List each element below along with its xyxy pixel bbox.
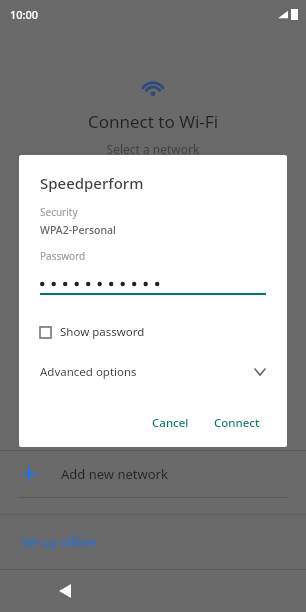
staticText: Show password <box>60 324 145 340</box>
staticText: Password <box>40 249 86 263</box>
button[interactable]: Show password <box>40 321 266 343</box>
button[interactable]: Set up offline <box>0 515 306 569</box>
staticText: Select a network <box>0 141 306 157</box>
button[interactable]: Connect <box>206 409 268 437</box>
staticText: Speedperform <box>40 173 144 193</box>
staticText: Connect to Wi-Fi <box>0 110 306 133</box>
staticText: WPA2-Personal <box>40 223 116 237</box>
staticText: Cancel <box>152 415 189 431</box>
staticText: Connect <box>214 415 260 431</box>
button[interactable]: Advanced options <box>40 360 266 384</box>
button[interactable]: Add new network <box>0 451 306 497</box>
button[interactable]: Back <box>50 576 80 606</box>
staticText: Advanced options <box>40 364 137 380</box>
button[interactable] <box>40 275 266 293</box>
button[interactable]: Cancel <box>144 409 197 437</box>
staticText: 10:00 <box>10 7 39 22</box>
staticText: Set up offline <box>21 534 96 550</box>
staticText: Security <box>40 205 78 219</box>
staticText: Add new network <box>61 465 168 483</box>
